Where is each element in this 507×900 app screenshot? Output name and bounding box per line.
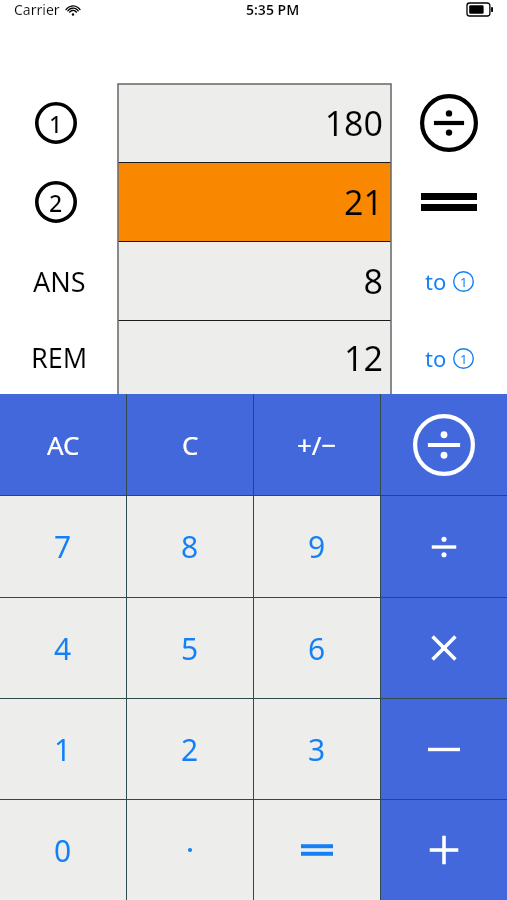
staticText: Carrier (14, 0, 60, 19)
staticText: to (425, 266, 447, 296)
button[interactable]: 2 (127, 699, 253, 799)
button[interactable]: Multiply (381, 598, 507, 698)
button[interactable]: AC (0, 394, 126, 495)
staticText: to (425, 343, 447, 373)
staticText: 8 (363, 258, 383, 304)
button[interactable]: 9 (254, 496, 380, 597)
button[interactable]: Decimal point (127, 800, 253, 900)
staticText: 5:35 PM (246, 0, 300, 19)
button[interactable]: 7 (0, 496, 126, 597)
button[interactable]: 0 (0, 800, 126, 900)
staticText: 2 (181, 729, 199, 770)
staticText: 1 (49, 108, 63, 139)
staticText: 0 (54, 830, 72, 871)
button[interactable]: Add (381, 800, 507, 900)
button[interactable]: to (419, 337, 480, 379)
button[interactable]: Divide with remainder (381, 394, 507, 495)
staticText: 4 (54, 628, 72, 669)
staticText: ANS (33, 263, 86, 300)
staticText: 1 (460, 350, 468, 368)
staticText: 1 (460, 273, 468, 291)
button[interactable]: +/− (254, 394, 380, 495)
staticText: C (182, 427, 199, 462)
staticText: 180 (324, 100, 383, 146)
staticText: 7 (54, 526, 72, 567)
button[interactable]: 5 (127, 598, 253, 698)
staticText: 6 (308, 628, 326, 669)
button[interactable]: Divide (381, 496, 507, 597)
staticText: 12 (344, 335, 383, 381)
staticText: 8 (181, 526, 199, 567)
staticText: 5 (181, 628, 199, 669)
button[interactable]: Subtract (381, 699, 507, 799)
button[interactable]: 6 (254, 598, 380, 698)
button[interactable]: to (419, 260, 480, 302)
button[interactable]: 3 (254, 699, 380, 799)
staticText: +/− (297, 427, 337, 462)
staticText: 9 (308, 526, 326, 567)
staticText: 3 (308, 729, 326, 770)
button[interactable]: 8 (127, 496, 253, 597)
button[interactable]: C (127, 394, 253, 495)
staticText: 2 (49, 187, 63, 218)
staticText: AC (47, 427, 80, 462)
staticText: 21 (344, 179, 383, 225)
button[interactable]: 4 (0, 598, 126, 698)
button[interactable]: Equals (254, 800, 380, 900)
button[interactable]: 1 (0, 699, 126, 799)
staticText: 1 (54, 729, 72, 770)
staticText: REM (31, 339, 88, 376)
